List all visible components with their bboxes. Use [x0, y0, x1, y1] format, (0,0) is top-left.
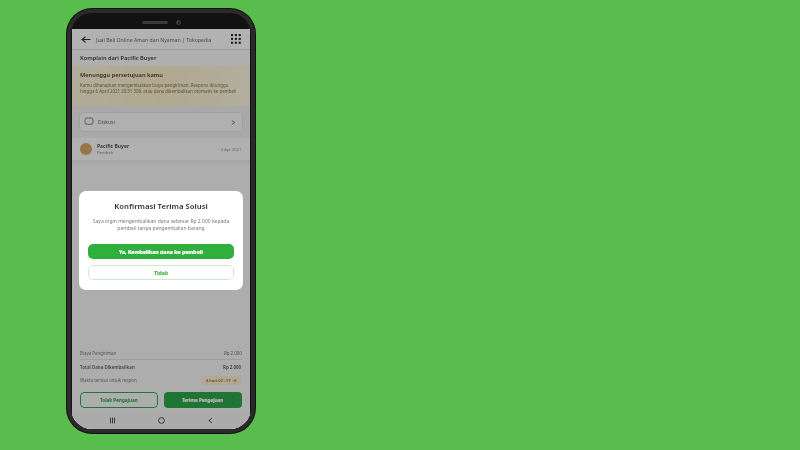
staticText: Terima Pengajuan [182, 397, 224, 403]
staticText: Biaya Pengiriman [80, 350, 224, 356]
staticText: Tolak Pengajuan [100, 397, 138, 403]
button[interactable]: Recents [103, 412, 121, 429]
staticText: Jual Beli Online Aman dan Nyaman | Tokop… [96, 36, 228, 43]
staticText: Diskusi [98, 119, 230, 126]
staticText: Komplain dari Pacific Buyer [80, 54, 157, 62]
button[interactable]: Ya, Kembalikan dana ke pembeli [88, 244, 234, 259]
staticText: 6 Apr 2021 [221, 147, 242, 152]
staticText: Saya ingin mengembalikan dana sebesar Rp… [92, 218, 230, 232]
button[interactable]: Back [201, 412, 219, 429]
staticText: Rp 2.000 [223, 364, 242, 370]
button[interactable]: Home [152, 412, 170, 429]
staticText: Waktu tersisa untuk respon [80, 377, 201, 383]
staticText: Total Dana Dikembalikan [80, 364, 223, 370]
staticText: Konfirmasi Terima Solusi [114, 201, 208, 211]
button[interactable]: Menu [228, 31, 244, 47]
staticText: Kamu diharapkan mengembalikan biaya peng… [80, 82, 242, 94]
button[interactable]: Tidak [88, 265, 234, 280]
staticText: Tidak [154, 269, 169, 276]
staticText: 4 hari 02 : 57 : 8 [206, 378, 237, 383]
button[interactable]: Back [78, 32, 92, 46]
staticText: Pacific Buyer [97, 143, 130, 150]
staticText: Ya, Kembalikan dana ke pembeli [119, 248, 203, 255]
staticText: Menunggu persetujuan kamu [80, 71, 163, 79]
button[interactable]: Diskusi [79, 112, 243, 132]
staticText: Rp 2.000 [224, 350, 242, 356]
button[interactable]: Terima Pengajuan [164, 392, 242, 408]
staticText: Pembeli [97, 150, 113, 156]
button[interactable]: Tolak Pengajuan [80, 392, 158, 408]
